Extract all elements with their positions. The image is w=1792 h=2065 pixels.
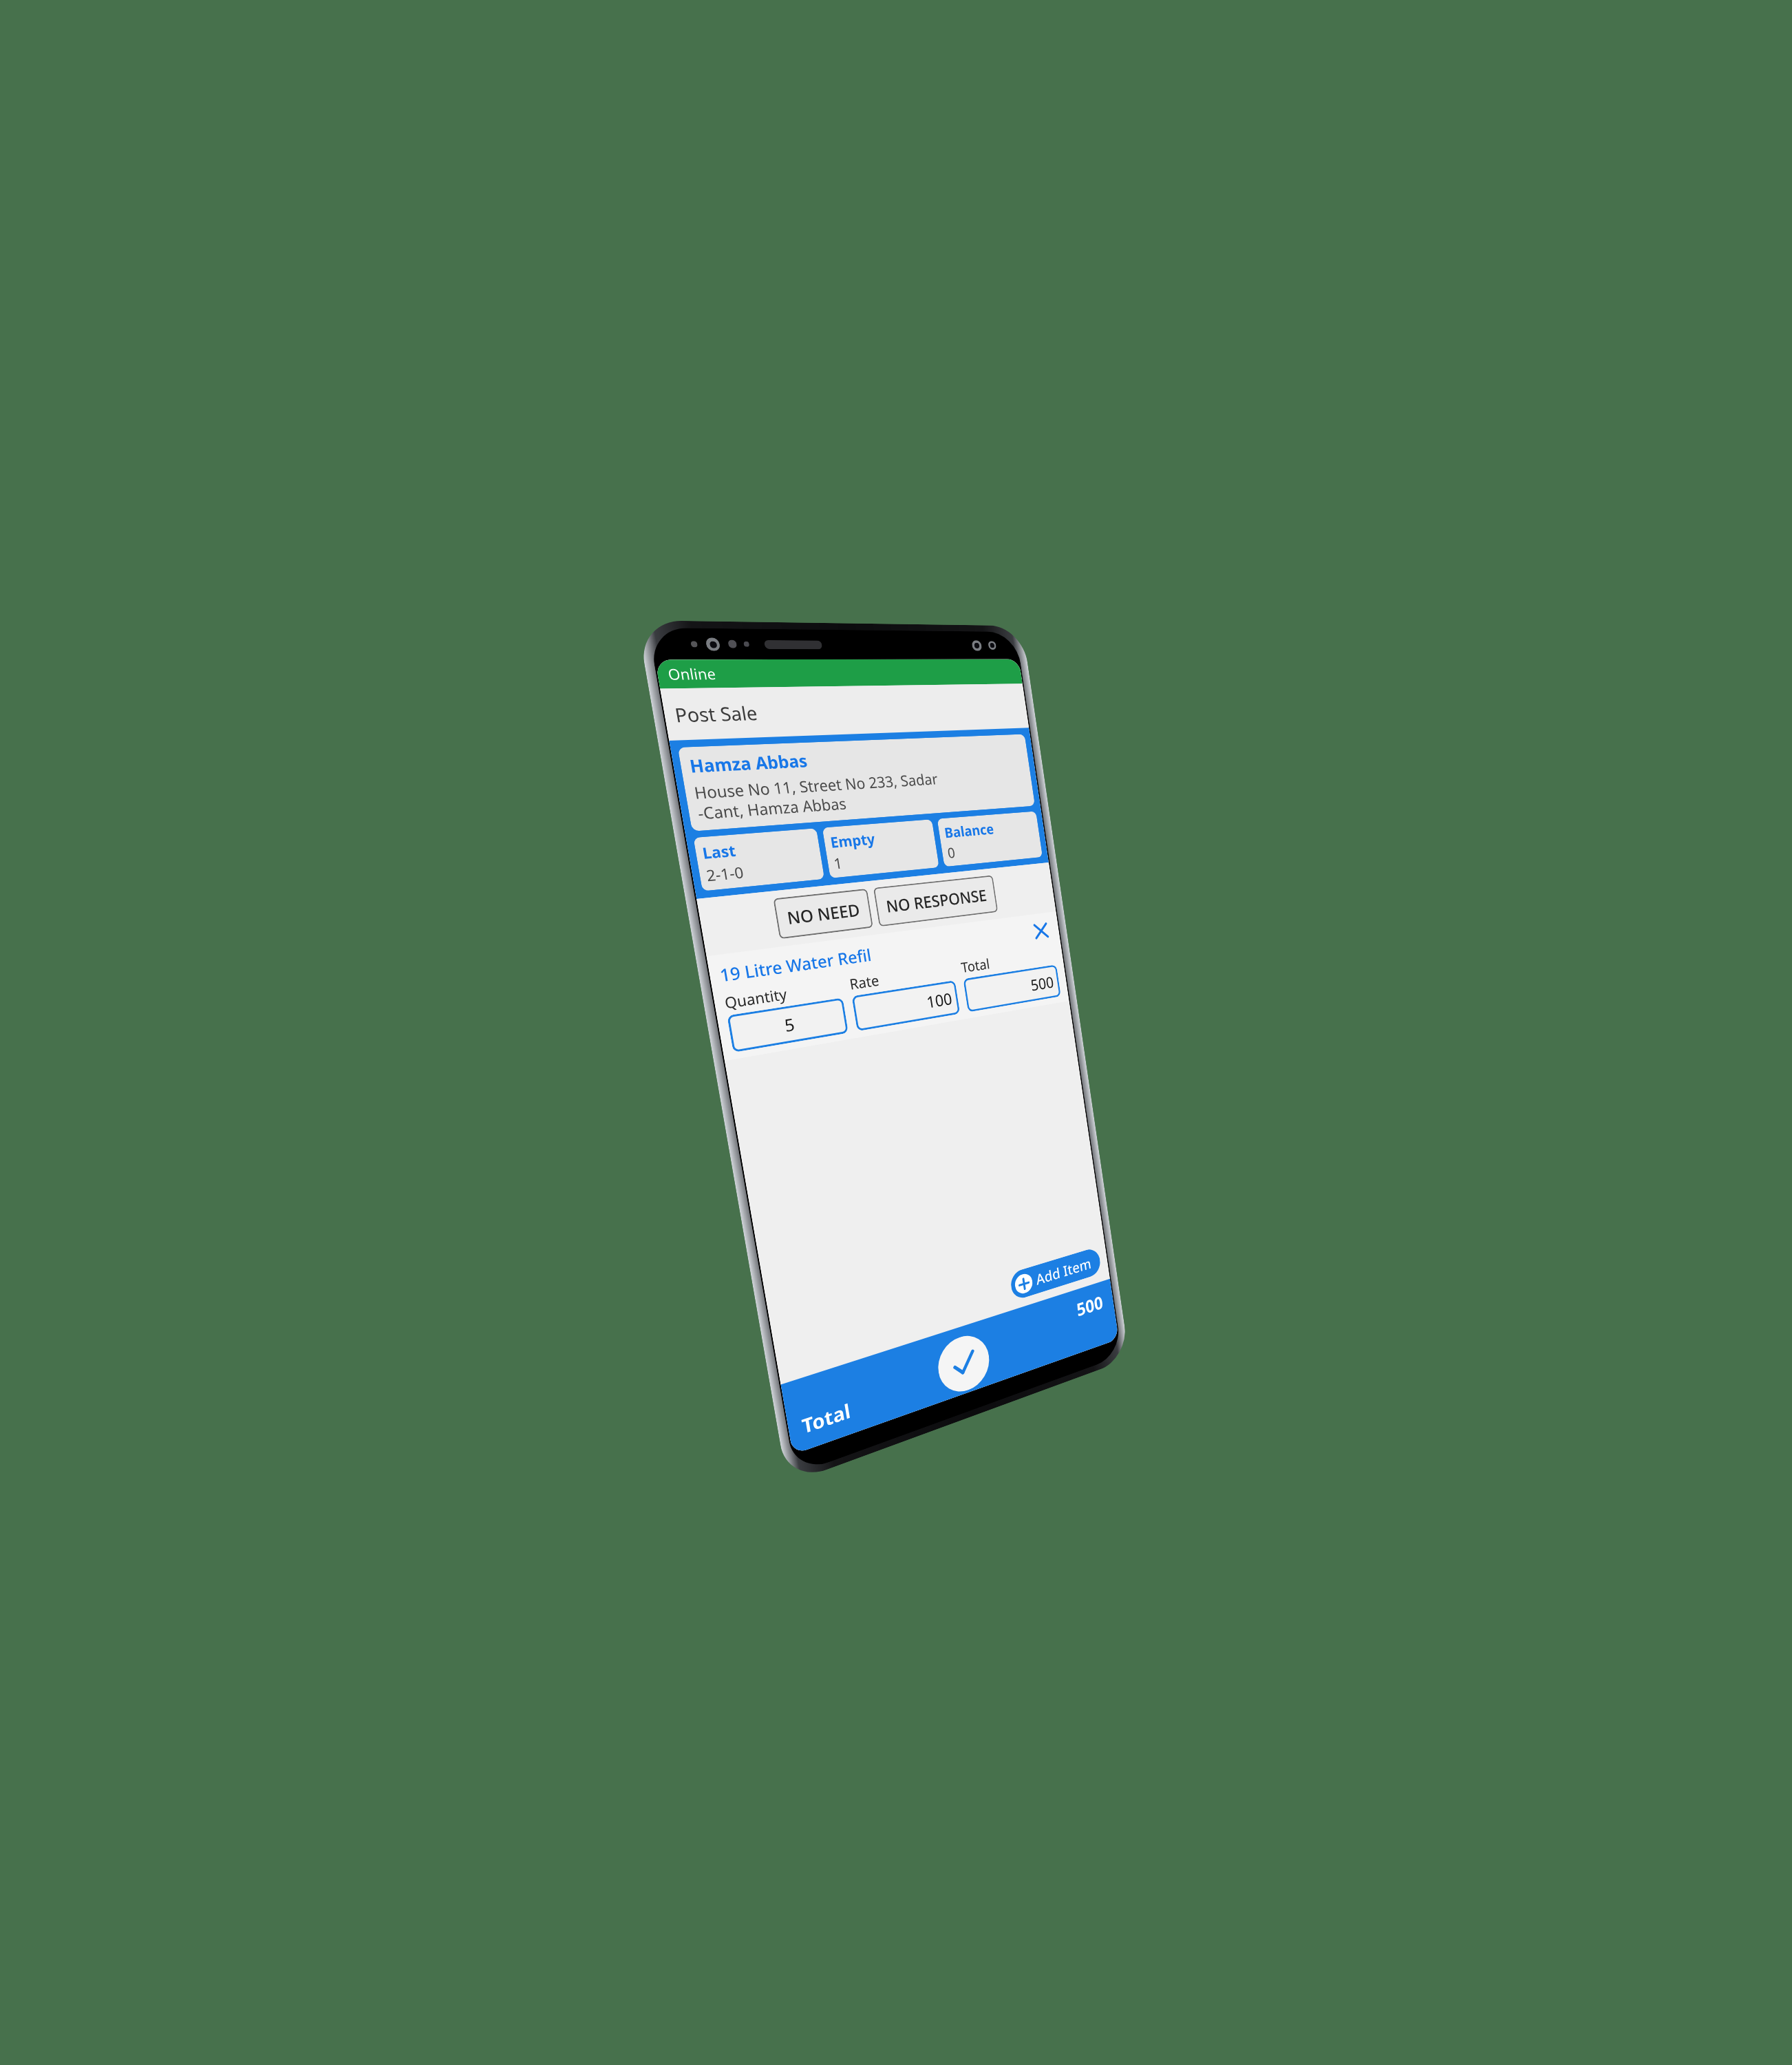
staticText: Quantity (723, 983, 789, 1013)
staticText: Total (800, 1397, 852, 1440)
staticText: NO RESPONSE (884, 884, 988, 917)
button[interactable]: Confirm sale (934, 1329, 993, 1399)
button[interactable]: Hamza Abbas (678, 734, 1035, 831)
button[interactable]: Empty (822, 819, 939, 878)
button[interactable]: Balance (937, 811, 1043, 867)
staticText: Hamza Abbas (688, 749, 809, 778)
staticText: 100 (925, 987, 953, 1013)
button[interactable]: 500 (963, 964, 1061, 1012)
staticText: Empty (829, 828, 876, 852)
button[interactable]: Last (693, 828, 825, 891)
staticText: House No 11, Street No 233, Sadar -Cant,… (692, 768, 942, 824)
staticText: 500 (1075, 1290, 1105, 1322)
button[interactable]: 100 (852, 980, 960, 1031)
staticText: Post Sale (673, 700, 759, 728)
button[interactable]: NO RESPONSE (873, 875, 998, 927)
button[interactable]: NO NEED (773, 889, 873, 939)
staticText: 5 (783, 1012, 797, 1037)
button[interactable]: Remove item (1029, 918, 1053, 944)
staticText: Rate (848, 970, 881, 994)
staticText: 19 Litre Water Refil (718, 922, 1033, 987)
staticText: NO NEED (785, 898, 862, 929)
staticText: 0 (946, 842, 956, 862)
staticText: Balance (943, 819, 995, 842)
staticText: Add Item (1035, 1253, 1092, 1289)
staticText: 500 (1029, 971, 1055, 995)
staticText: 1 (832, 852, 844, 873)
staticText: Last (701, 839, 738, 863)
staticText: Total (960, 954, 991, 977)
staticText: 2-1-0 (705, 861, 745, 886)
button[interactable]: Add Item (1009, 1246, 1102, 1301)
button[interactable]: 5 (727, 998, 848, 1053)
staticText: Online (666, 664, 718, 685)
